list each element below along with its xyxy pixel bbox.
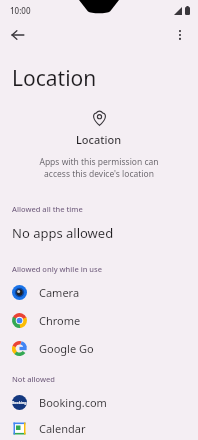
button[interactable]: Calendar — [0, 416, 198, 440]
button[interactable]: Booking — [0, 388, 198, 416]
button[interactable]: Google Go — [0, 334, 198, 362]
button[interactable]: No apps allowed — [0, 222, 198, 244]
staticText: Location — [76, 132, 122, 147]
button[interactable]: Chrome — [0, 306, 198, 334]
staticText: Allowed only while in use — [12, 264, 102, 274]
staticText: Camera — [39, 285, 80, 300]
staticText: Apps with this permission can access thi… — [26, 156, 172, 180]
staticText: Chrome — [39, 313, 81, 328]
staticText: Allowed all the time — [12, 204, 83, 214]
button[interactable]: More options — [166, 21, 194, 49]
button[interactable]: Back — [4, 21, 32, 49]
button[interactable]: Camera — [0, 278, 198, 306]
staticText: Calendar — [39, 421, 86, 436]
staticText: Booking — [12, 400, 27, 405]
staticText: No apps allowed — [12, 224, 114, 242]
staticText: Not allowed — [12, 374, 56, 384]
staticText: Location — [12, 64, 97, 93]
staticText: 10:00 — [10, 5, 31, 16]
staticText: Google Go — [39, 341, 94, 356]
staticText: Booking.com — [39, 395, 107, 410]
